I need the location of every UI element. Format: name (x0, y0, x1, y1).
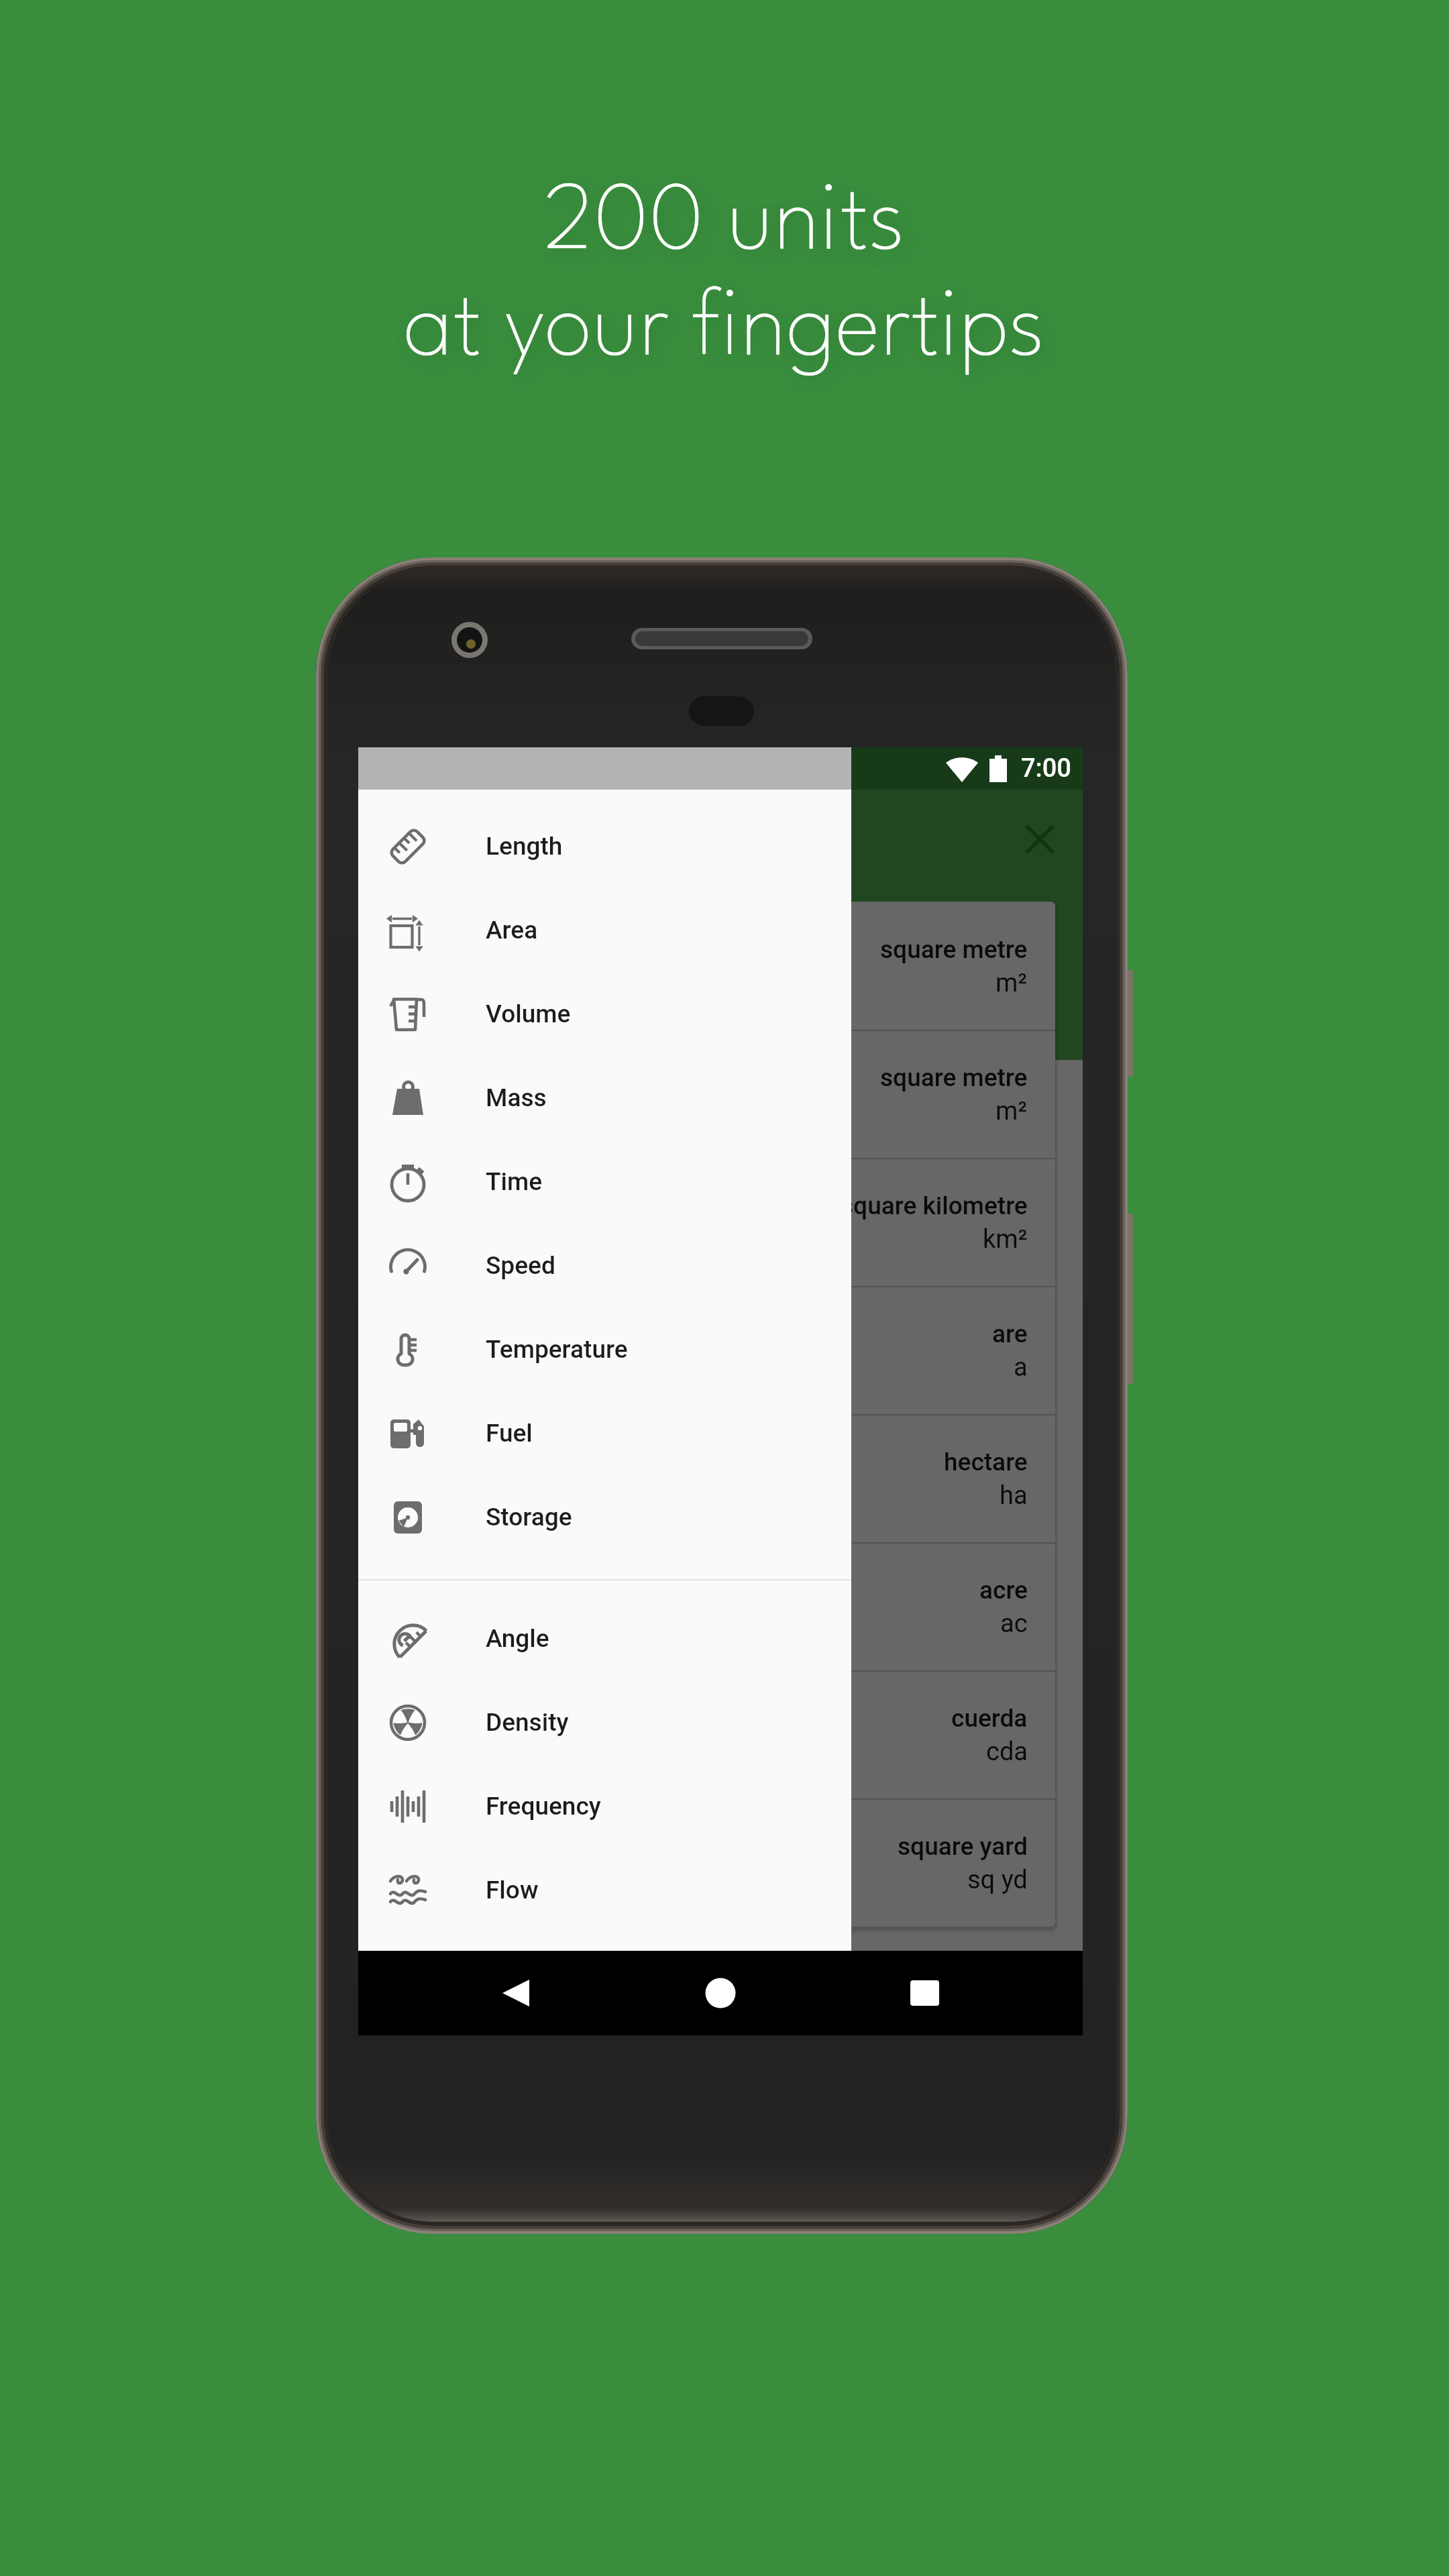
staticText: Storage (486, 1503, 572, 1532)
staticText: Density (486, 1708, 569, 1737)
staticText: cuerda (951, 1704, 1028, 1733)
button[interactable]: square kilometre (385, 1158, 1055, 1286)
staticText: Length (486, 832, 563, 861)
staticText: ha (1000, 1481, 1028, 1511)
staticText: Temperature (486, 1335, 628, 1364)
button[interactable]: Area (358, 888, 851, 972)
button[interactable]: square metre (385, 1030, 1055, 1158)
button[interactable]: Length (358, 804, 851, 888)
button[interactable]: Close (991, 791, 1088, 888)
button[interactable]: Density (358, 1680, 851, 1764)
staticText: Area (486, 916, 538, 945)
button[interactable]: Temperature (358, 1307, 851, 1391)
staticText: Time (486, 1167, 543, 1196)
staticText: Frequency (486, 1792, 601, 1821)
button[interactable]: square metre (385, 902, 1055, 1030)
staticText: Speed (486, 1251, 555, 1280)
button[interactable]: Time (358, 1140, 851, 1224)
staticText: Fuel (486, 1419, 533, 1448)
button[interactable]: Mass (358, 1056, 851, 1140)
staticText: 7:00 (1021, 753, 1071, 784)
staticText: hectare (944, 1448, 1028, 1477)
staticText: a (1014, 1352, 1028, 1383)
staticText: Flow (486, 1876, 539, 1904)
button[interactable]: Fuel (358, 1391, 851, 1475)
staticText: are (992, 1320, 1028, 1348)
button[interactable]: square yard (385, 1799, 1055, 1927)
staticText: square yard (898, 1832, 1028, 1861)
staticText: m² (996, 1096, 1028, 1126)
button[interactable]: Volume (358, 972, 851, 1056)
button[interactable]: hectare (385, 1414, 1055, 1542)
button[interactable]: Storage (358, 1475, 851, 1559)
button[interactable]: Recents (885, 1953, 965, 2033)
staticText: Mass (486, 1083, 547, 1112)
staticText: acre (979, 1576, 1028, 1605)
button[interactable]: Flow (358, 1848, 851, 1932)
staticText: ac (1000, 1609, 1028, 1639)
staticText: 200 units (0, 180, 1449, 269)
button[interactable]: Angle (358, 1597, 851, 1680)
staticText: km² (983, 1224, 1028, 1254)
button[interactable]: acre (385, 1542, 1055, 1670)
staticText: cda (986, 1737, 1028, 1767)
button[interactable]: Back (476, 1953, 556, 2033)
staticText: sq yd (967, 1865, 1028, 1895)
staticText: m² (996, 968, 1028, 998)
button[interactable]: cuerda (385, 1670, 1055, 1799)
staticText: square metre (880, 1063, 1028, 1092)
staticText: square kilometre (841, 1191, 1028, 1220)
button[interactable]: Speed (358, 1224, 851, 1307)
staticText: at your fingertips (0, 286, 1449, 375)
button[interactable]: Frequency (358, 1764, 851, 1848)
button[interactable]: Home (680, 1953, 761, 2033)
staticText: square metre (880, 935, 1028, 964)
button[interactable]: are (385, 1286, 1055, 1414)
staticText: Volume (486, 1000, 571, 1028)
staticText: Angle (486, 1624, 549, 1653)
